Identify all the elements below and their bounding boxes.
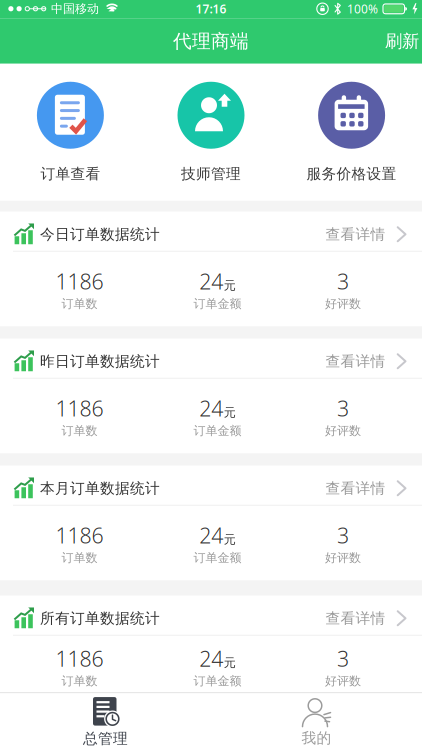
button[interactable]: 刷新 (385, 31, 422, 52)
staticText: 元 (224, 655, 236, 670)
button[interactable]: 查看详情 (325, 479, 422, 497)
staticText: 刷新 (385, 31, 419, 52)
button[interactable]: 查看详情 (325, 352, 422, 370)
staticText: 1186 (55, 267, 103, 295)
staticText: 元 (224, 405, 236, 420)
staticText: 查看详情 (325, 225, 385, 243)
staticText: 100% (347, 1, 378, 17)
staticText: 元 (224, 278, 236, 293)
staticText: 本月订单数据统计 (40, 479, 160, 497)
button[interactable]: 我的 (211, 697, 422, 747)
staticText: 今日订单数据统计 (40, 225, 160, 243)
staticText: 查看详情 (325, 352, 385, 370)
staticText: 我的 (301, 729, 331, 747)
staticText: 订单查看 (40, 165, 100, 183)
staticText: 24 (199, 394, 223, 422)
staticText: 3 (337, 521, 349, 549)
staticText: 订单金额 (193, 423, 241, 438)
staticText: 订单数 (61, 550, 97, 565)
staticText: 订单数 (61, 423, 97, 438)
staticText: 1186 (55, 521, 103, 549)
button[interactable]: 总管理 (0, 697, 211, 748)
staticText: 24 (199, 644, 223, 672)
staticText: 订单金额 (193, 296, 241, 311)
button[interactable]: 服务价格设置 (281, 82, 422, 183)
staticText: 17:16 (195, 1, 226, 17)
staticText: 技师管理 (181, 165, 241, 183)
staticText: 查看详情 (325, 479, 385, 497)
staticText: 3 (337, 267, 349, 295)
staticText: 昨日订单数据统计 (40, 352, 160, 370)
staticText: 1186 (55, 394, 103, 422)
staticText: 服务价格设置 (307, 165, 397, 183)
button[interactable]: 查看详情 (325, 225, 422, 243)
staticText: 3 (337, 644, 349, 672)
staticText: 好评数 (325, 296, 361, 311)
staticText: 总管理 (83, 730, 128, 748)
staticText: 查看详情 (325, 609, 385, 627)
staticText: 订单数 (61, 296, 97, 311)
staticText: 代理商端 (173, 30, 249, 53)
button[interactable]: 技师管理 (141, 82, 281, 183)
staticText: 元 (224, 532, 236, 547)
staticText: 24 (199, 521, 223, 549)
staticText: 订单数 (61, 673, 97, 688)
staticText: 好评数 (325, 673, 361, 688)
staticText: 3 (337, 394, 349, 422)
staticText: 订单金额 (193, 673, 241, 688)
staticText: 好评数 (325, 423, 361, 438)
staticText: 所有订单数据统计 (40, 609, 160, 627)
button[interactable]: 查看详情 (325, 609, 422, 627)
staticText: 中国移动 (51, 1, 99, 16)
staticText: 订单金额 (193, 550, 241, 565)
staticText: 24 (199, 267, 223, 295)
staticText: 1186 (55, 644, 103, 672)
button[interactable]: 订单查看 (0, 82, 141, 183)
staticText: 好评数 (325, 550, 361, 565)
